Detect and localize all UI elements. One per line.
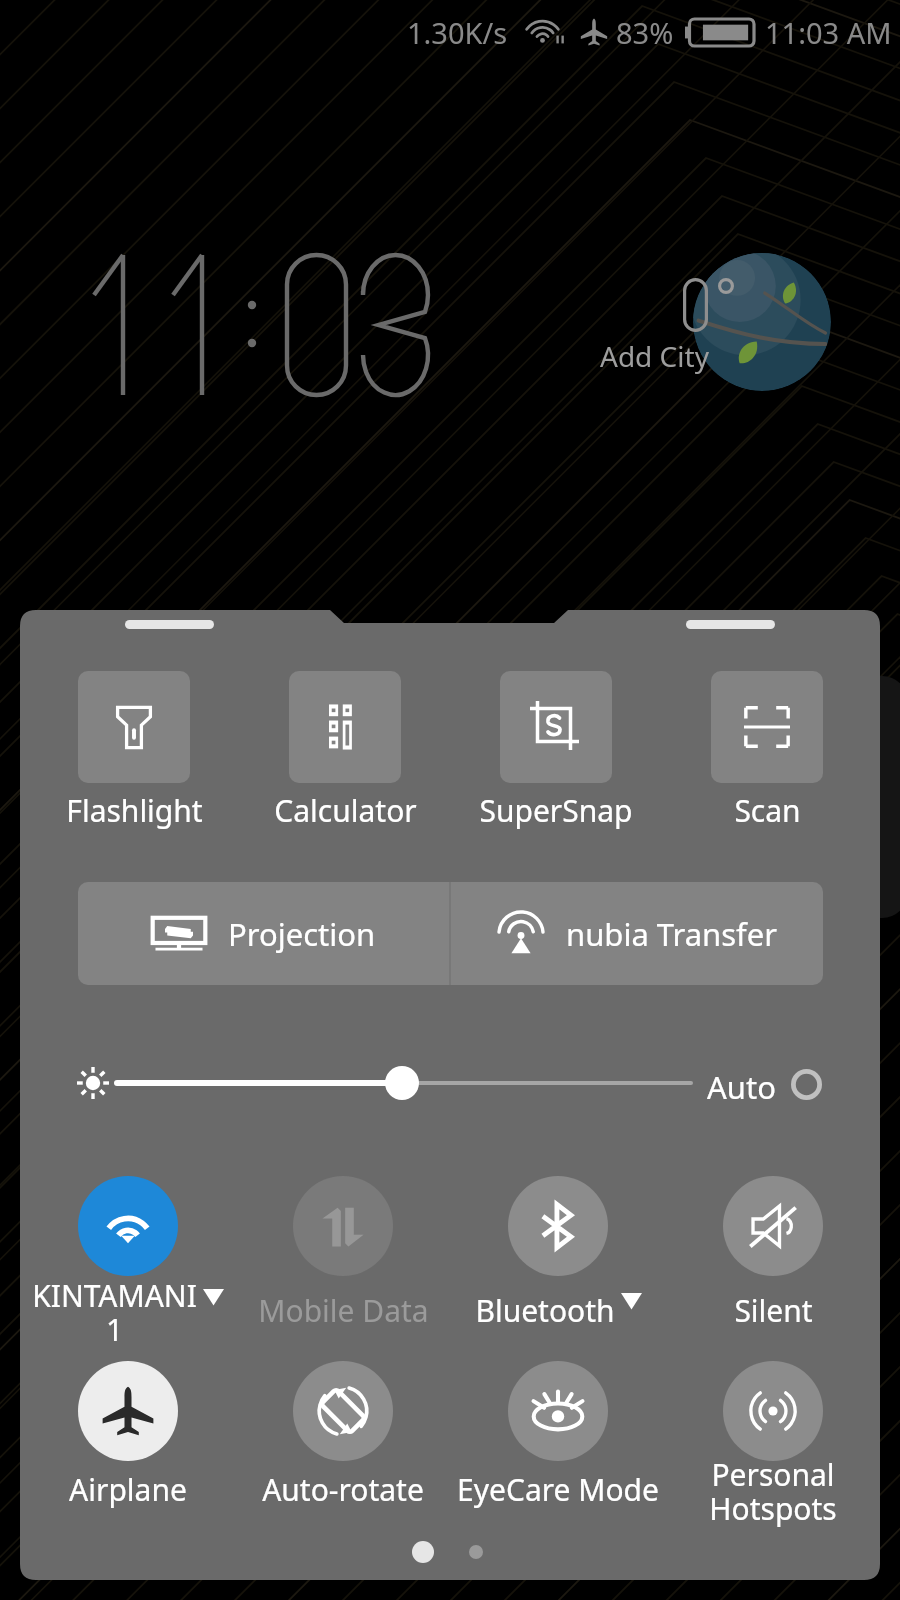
button[interactable]: Weather [693, 253, 831, 391]
staticText: KINTAMANI 1 [32, 1275, 197, 1349]
staticText: EyeCare Mode [457, 1469, 659, 1510]
staticText: SuperSnap [479, 790, 633, 831]
button[interactable]: Calculator [289, 671, 401, 783]
staticText: Flashlight [66, 790, 203, 831]
button[interactable] [502, 1176, 614, 1346]
staticText: Bluetooth [475, 1290, 615, 1331]
staticText: Scan [734, 790, 801, 831]
button[interactable] [287, 1361, 399, 1531]
button[interactable]: SuperSnap [500, 671, 612, 783]
button[interactable]: Scan [711, 671, 823, 783]
button[interactable]: Brightness [113, 1063, 695, 1103]
button[interactable]: Add City [600, 337, 709, 375]
staticText: 11:03 AM [765, 13, 892, 52]
staticText: Personal Hotspots [709, 1454, 837, 1528]
button[interactable] [717, 1361, 829, 1531]
staticText: Airplane [69, 1469, 187, 1510]
staticText: 83% [616, 13, 674, 52]
staticText: Add City [600, 337, 709, 375]
button[interactable] [717, 1176, 829, 1346]
button[interactable] [287, 1176, 399, 1346]
staticText: Auto-rotate [262, 1469, 424, 1510]
staticText: Calculator [274, 790, 417, 831]
staticText: nubia Transfer [566, 913, 778, 955]
staticText: Mobile Data [258, 1290, 429, 1331]
button[interactable] [72, 1176, 184, 1346]
button[interactable] [502, 1361, 614, 1531]
staticText: Silent [734, 1290, 813, 1331]
staticText: Auto [707, 1066, 776, 1102]
button[interactable]: nubia Transfer [451, 882, 823, 985]
button[interactable] [72, 1361, 184, 1531]
button[interactable]: Auto [707, 1066, 831, 1102]
button[interactable]: Projection [78, 882, 449, 985]
staticText: 1.30K/s [407, 13, 508, 52]
staticText: Projection [228, 913, 376, 955]
button[interactable]: Flashlight [78, 671, 190, 783]
